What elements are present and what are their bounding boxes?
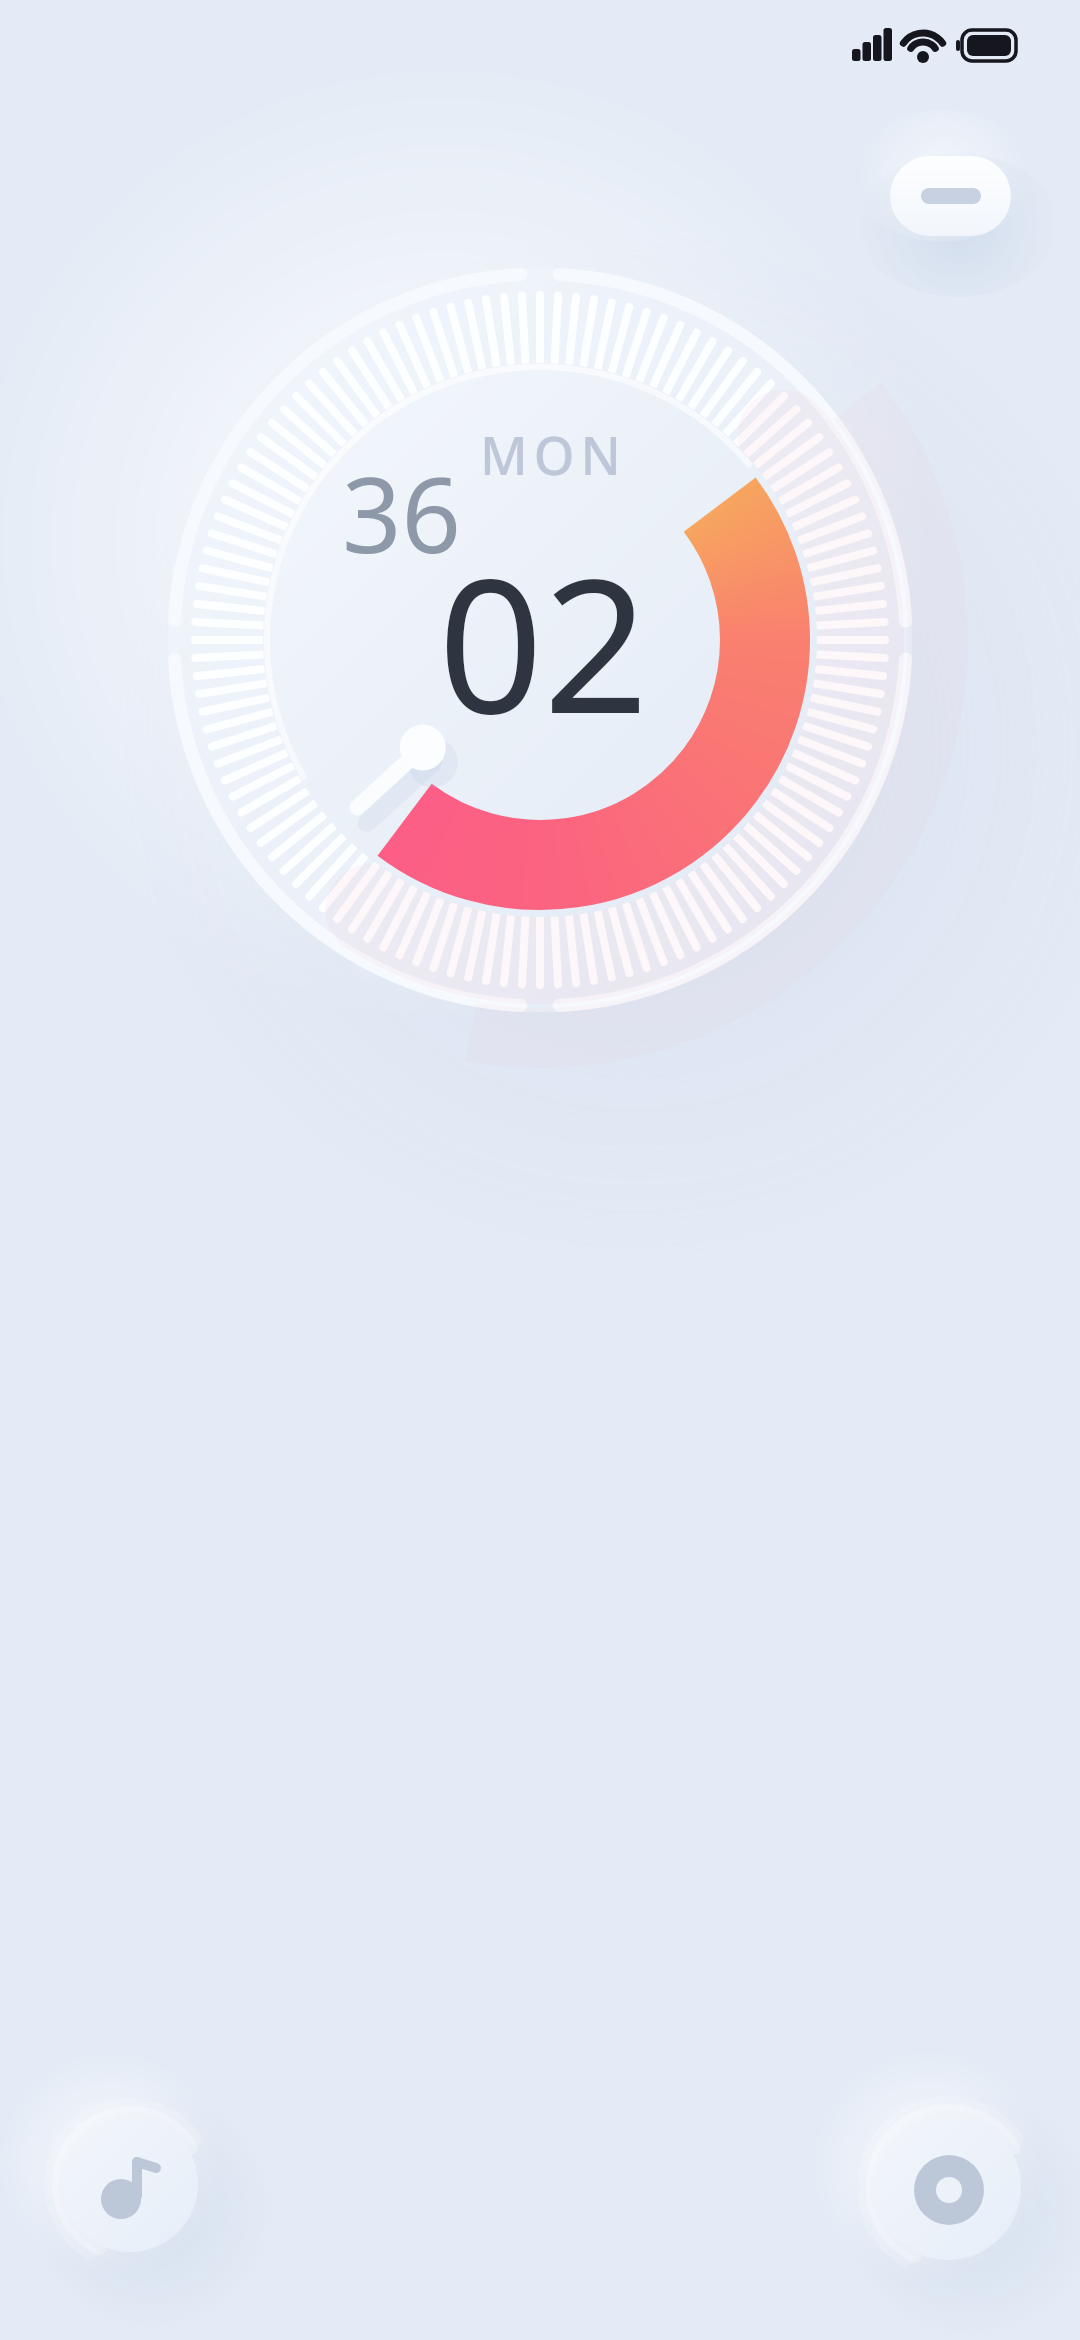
staticText: MON [480, 419, 627, 490]
button[interactable] [62, 2116, 198, 2252]
button[interactable] [890, 156, 1011, 236]
button[interactable] [875, 2114, 1021, 2260]
staticText: 02 [438, 516, 649, 767]
staticText: 36 [342, 442, 461, 584]
button[interactable] [263, 363, 817, 917]
